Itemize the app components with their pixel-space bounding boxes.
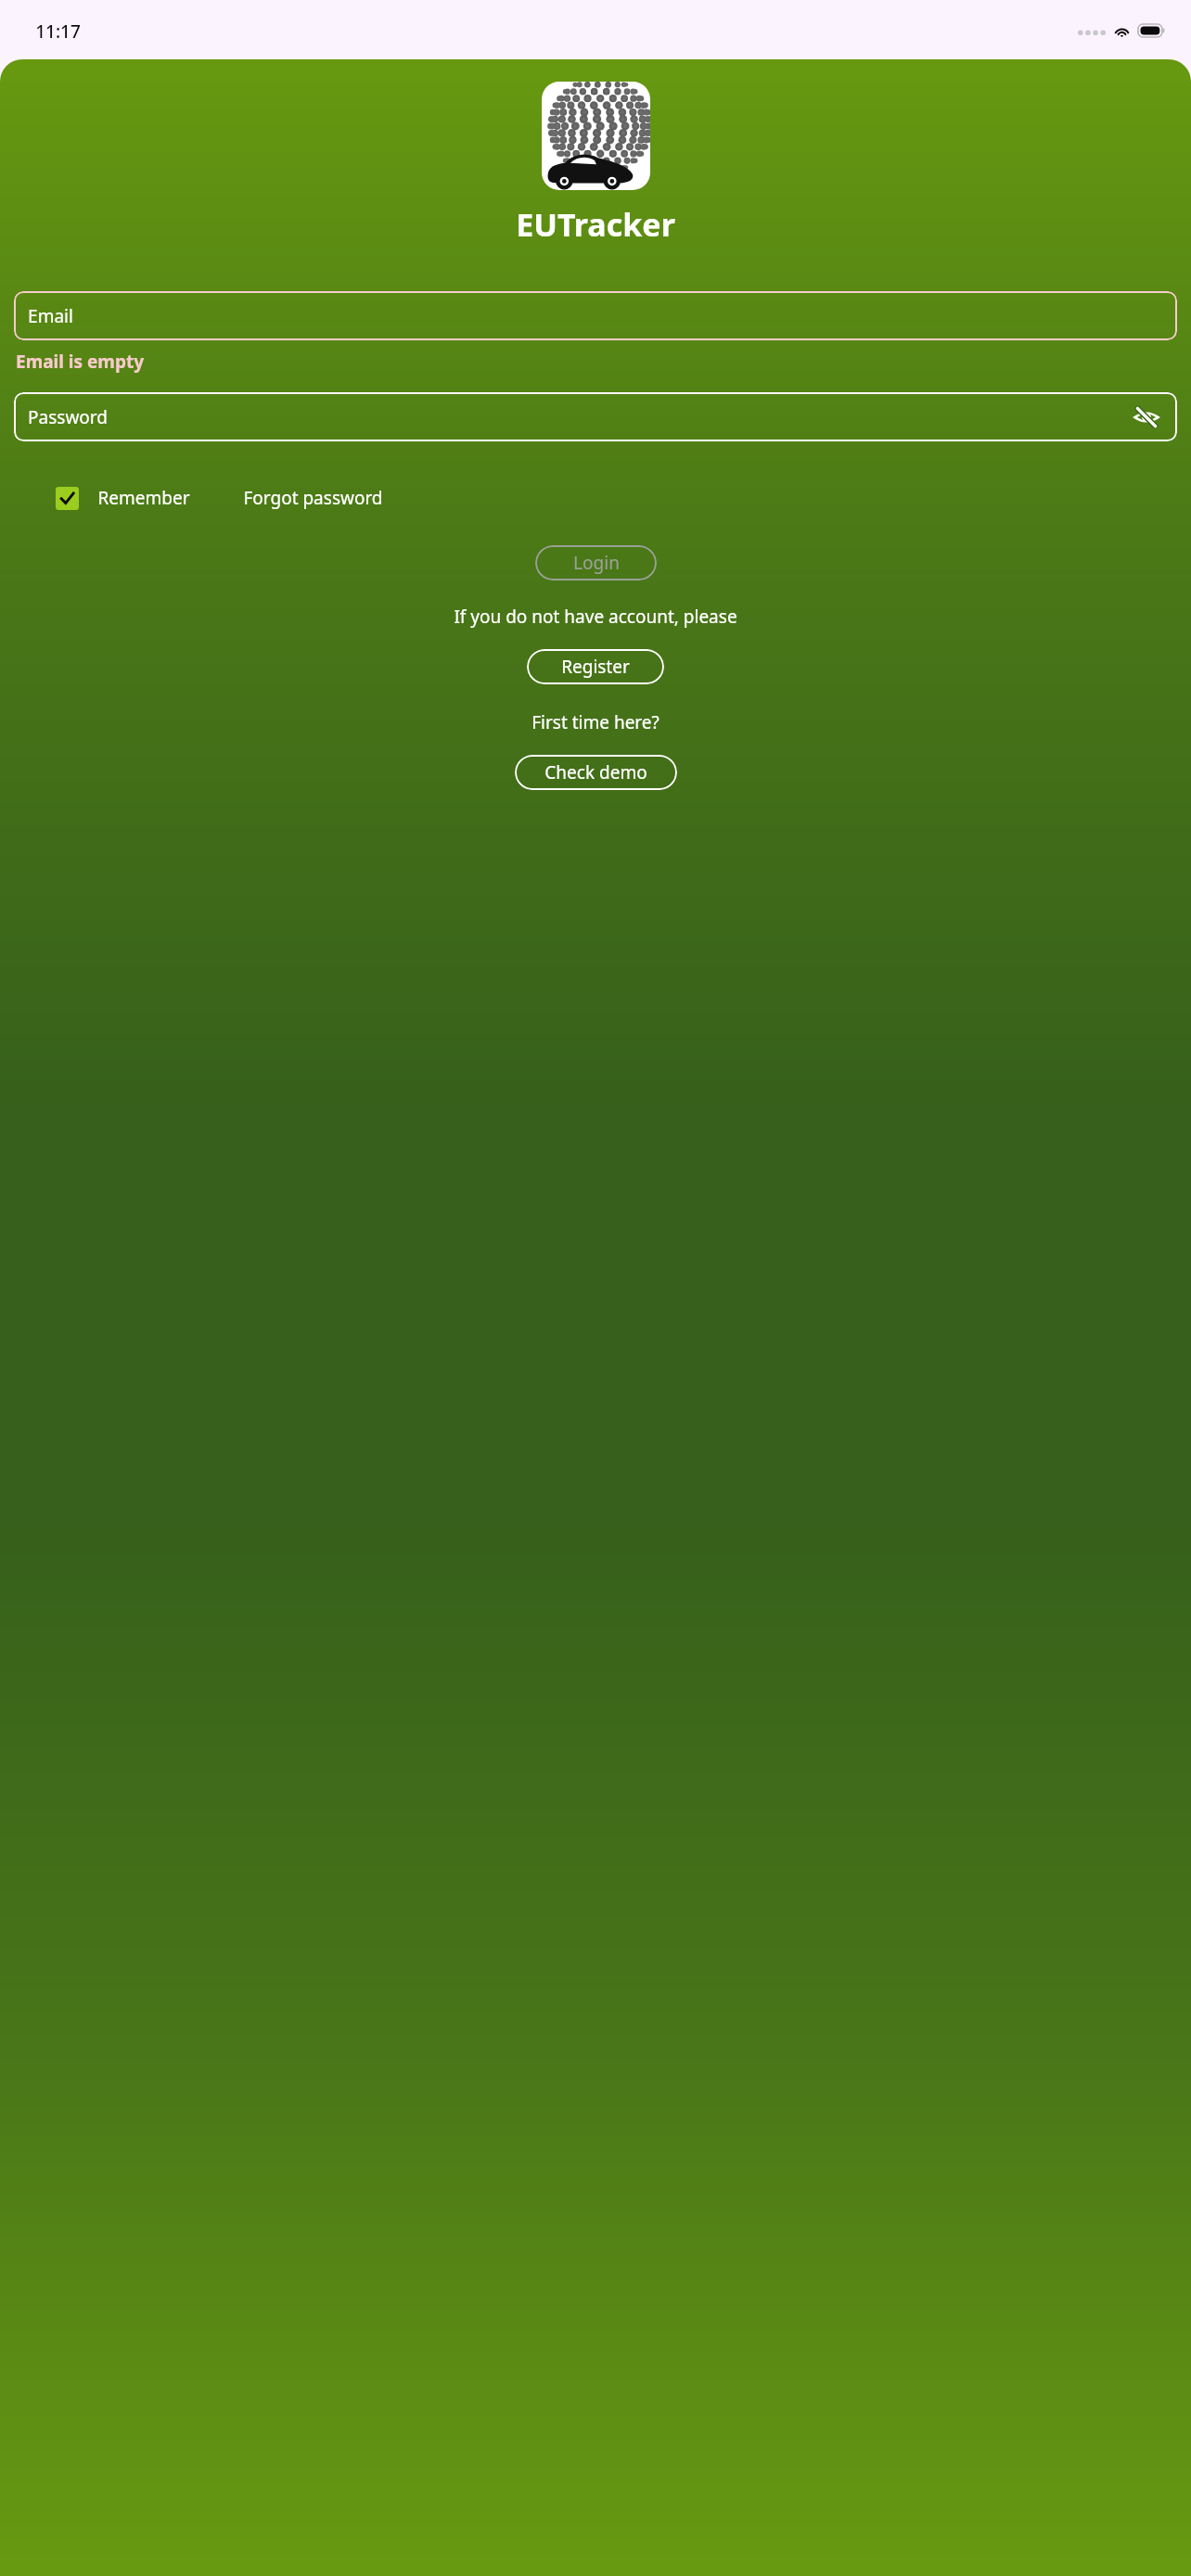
staticText: Register <box>561 655 630 679</box>
button[interactable]: Remember <box>56 486 190 510</box>
staticText: Check demo <box>544 760 647 784</box>
button[interactable]: Register <box>527 649 664 684</box>
button[interactable]: Forgot password <box>243 486 383 510</box>
staticText: Forgot password <box>243 486 383 510</box>
staticText: 11:17 <box>35 19 81 44</box>
button[interactable]: Login <box>535 545 657 580</box>
staticText: First time here? <box>531 710 660 734</box>
button[interactable]: Check demo <box>515 755 677 790</box>
button[interactable]: Email <box>14 291 1177 340</box>
staticText: Login <box>573 551 620 575</box>
staticText: Remember <box>97 486 190 510</box>
other: EUTracker logo <box>542 82 650 190</box>
button[interactable]: Password <box>14 392 1177 441</box>
staticText: EUTracker <box>516 203 675 246</box>
staticText: If you do not have account, please <box>454 605 737 629</box>
button[interactable]: Show password <box>1130 401 1163 434</box>
staticText: Password <box>28 405 108 429</box>
staticText: Email is empty <box>16 350 144 374</box>
staticText: Email <box>28 304 73 328</box>
